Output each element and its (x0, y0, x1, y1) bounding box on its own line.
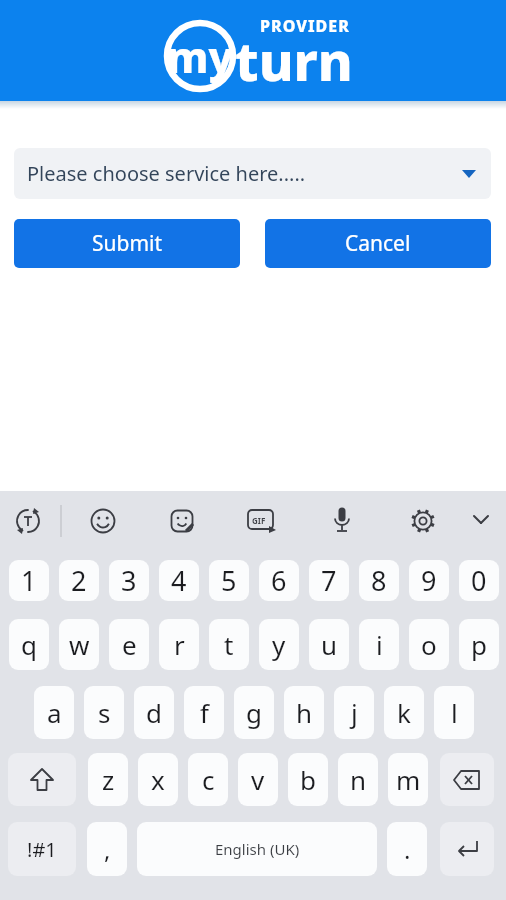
staticText: f (200, 695, 209, 730)
staticText: m (396, 762, 421, 797)
staticText: !#1 (27, 836, 57, 863)
button[interactable] (440, 822, 494, 876)
button[interactable]: 4 (159, 560, 199, 601)
button[interactable]: GIF (247, 509, 277, 533)
button[interactable] (470, 512, 492, 528)
button[interactable] (169, 508, 195, 534)
button[interactable]: i (359, 619, 399, 670)
staticText: r (174, 627, 185, 662)
staticText: turn (235, 24, 353, 96)
button[interactable]: 7 (309, 560, 349, 601)
button[interactable] (331, 506, 353, 536)
staticText: 0 (471, 562, 487, 599)
button[interactable] (409, 507, 437, 535)
staticText: 8 (371, 562, 387, 599)
staticText: e (122, 627, 137, 662)
staticText: t (224, 627, 234, 662)
staticText: z (102, 762, 115, 797)
staticText: Cancel (345, 229, 411, 258)
staticText: y (272, 627, 286, 662)
staticText: Submit (92, 229, 163, 258)
button[interactable]: , (87, 822, 127, 876)
button[interactable] (14, 507, 42, 535)
button[interactable]: a (34, 686, 74, 739)
staticText: c (202, 762, 215, 797)
button[interactable] (90, 508, 116, 534)
staticText: Please choose service here..... (27, 160, 306, 187)
staticText: g (246, 695, 262, 730)
button[interactable]: 2 (59, 560, 99, 601)
button[interactable]: v (238, 753, 278, 806)
button[interactable]: u (309, 619, 349, 670)
staticText: h (296, 695, 313, 730)
button[interactable]: q (9, 619, 49, 670)
button[interactable]: j (334, 686, 374, 739)
button[interactable]: Submit (14, 219, 240, 268)
staticText: 2 (71, 562, 87, 599)
button[interactable]: y (259, 619, 299, 670)
staticText: 3 (121, 562, 137, 599)
button[interactable]: 9 (409, 560, 449, 601)
button[interactable]: h (284, 686, 324, 739)
staticText: s (98, 695, 111, 730)
button[interactable]: p (459, 619, 499, 670)
staticText: l (451, 695, 458, 730)
staticText: 9 (421, 562, 437, 599)
button[interactable]: !#1 (8, 822, 76, 876)
staticText: p (471, 627, 487, 662)
button[interactable]: f (184, 686, 224, 739)
button[interactable]: English (UK) (137, 822, 377, 876)
staticText: i (376, 627, 383, 662)
button[interactable]: c (188, 753, 228, 806)
button[interactable]: b (288, 753, 328, 806)
button[interactable]: 1 (9, 560, 49, 601)
button[interactable]: r (159, 619, 199, 670)
staticText: x (151, 762, 165, 797)
staticText: 6 (271, 562, 287, 599)
staticText: q (21, 627, 37, 662)
button[interactable]: e (109, 619, 149, 670)
staticText: 7 (321, 562, 337, 599)
button[interactable]: Please choose service here..... (14, 148, 491, 199)
button[interactable] (440, 753, 494, 806)
button[interactable]: m (388, 753, 428, 806)
staticText: n (350, 762, 367, 797)
button[interactable]: 0 (459, 560, 499, 601)
button[interactable]: 5 (209, 560, 249, 601)
staticText: o (421, 627, 437, 662)
staticText: w (69, 627, 90, 662)
staticText: 1 (21, 562, 37, 599)
button[interactable]: x (138, 753, 178, 806)
button[interactable]: s (84, 686, 124, 739)
button[interactable]: o (409, 619, 449, 670)
button[interactable]: 6 (259, 560, 299, 601)
staticText: my (167, 28, 234, 84)
button[interactable]: z (88, 753, 128, 806)
button[interactable]: g (234, 686, 274, 739)
button[interactable]: Cancel (265, 219, 491, 268)
staticText: PROVIDER (260, 15, 350, 37)
staticText: u (321, 627, 338, 662)
staticText: English (UK) (215, 839, 300, 859)
button[interactable]: l (434, 686, 474, 739)
button[interactable]: w (59, 619, 99, 670)
staticText: b (300, 762, 316, 797)
staticText: 4 (171, 562, 187, 599)
staticText: . (404, 833, 411, 866)
staticText: 5 (221, 562, 237, 599)
staticText: a (47, 695, 62, 730)
staticText: GIF (252, 515, 266, 526)
staticText: k (397, 695, 411, 730)
button[interactable]: 8 (359, 560, 399, 601)
staticText: j (351, 695, 358, 730)
button[interactable]: n (338, 753, 378, 806)
button[interactable] (8, 753, 76, 806)
staticText: , (104, 833, 111, 866)
button[interactable]: . (387, 822, 427, 876)
staticText: d (146, 695, 162, 730)
button[interactable]: t (209, 619, 249, 670)
button[interactable]: d (134, 686, 174, 739)
staticText: v (251, 762, 265, 797)
button[interactable]: 3 (109, 560, 149, 601)
button[interactable]: k (384, 686, 424, 739)
